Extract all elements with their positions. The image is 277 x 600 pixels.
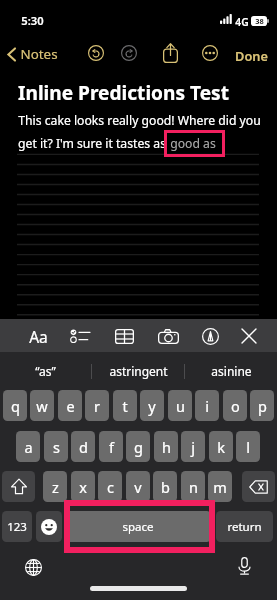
- button[interactable]: q: [3, 390, 27, 421]
- staticText: astringent: [109, 363, 168, 379]
- staticText: y: [148, 396, 156, 416]
- button[interactable]: Done: [235, 47, 268, 64]
- staticText: v: [134, 477, 142, 497]
- staticText: p: [258, 396, 267, 416]
- staticText: return: [227, 519, 262, 535]
- staticText: d: [79, 437, 88, 457]
- button[interactable]: Camera: [153, 321, 183, 351]
- staticText: r: [94, 396, 100, 416]
- button[interactable]: h: [154, 431, 178, 462]
- staticText: t: [122, 396, 128, 416]
- staticText: c: [107, 477, 114, 497]
- button[interactable]: e: [58, 390, 82, 421]
- button[interactable]: space: [65, 511, 211, 542]
- button[interactable]: Change keyboard: [23, 557, 43, 577]
- staticText: e: [66, 396, 75, 416]
- staticText: u: [176, 396, 185, 416]
- staticText: q: [11, 396, 20, 416]
- staticText: h: [162, 437, 171, 457]
- staticText: “as”: [35, 363, 56, 379]
- staticText: Aa: [29, 326, 48, 347]
- staticText: i: [205, 396, 209, 416]
- button[interactable]: Checklist: [65, 321, 95, 351]
- button[interactable]: i: [195, 390, 219, 421]
- button[interactable]: b: [153, 471, 177, 502]
- button[interactable]: z: [43, 471, 67, 502]
- staticText: l: [246, 437, 250, 457]
- staticText: asinine: [211, 363, 252, 379]
- button[interactable]: Share: [163, 43, 178, 63]
- staticText: get it? I'm sure it tastes as: [18, 135, 166, 152]
- staticText: o: [231, 396, 240, 416]
- staticText: This cake looks really good! Where did y…: [18, 112, 261, 129]
- staticText: m: [213, 477, 227, 497]
- button[interactable]: j: [181, 431, 205, 462]
- button[interactable]: Shift: [2, 471, 35, 502]
- button[interactable]: d: [71, 431, 95, 462]
- button[interactable]: asinine: [185, 352, 277, 390]
- button[interactable]: t: [113, 390, 137, 421]
- staticText: good as: [170, 135, 216, 152]
- button[interactable]: u: [168, 390, 192, 421]
- button[interactable]: Emoji: [36, 511, 62, 542]
- staticText: b: [161, 477, 170, 497]
- button[interactable]: g: [126, 431, 150, 462]
- button[interactable]: a: [16, 431, 40, 462]
- button[interactable]: astringent: [92, 352, 184, 390]
- staticText: Notes: [20, 45, 58, 63]
- staticText: 5:30: [21, 13, 44, 28]
- staticText: s: [53, 437, 60, 457]
- button[interactable]: More options: [202, 45, 218, 61]
- staticText: g: [134, 437, 143, 457]
- staticText: Inline Predictions Test: [18, 80, 229, 106]
- button[interactable]: s: [44, 431, 68, 462]
- button[interactable]: Dictation: [234, 556, 254, 576]
- staticText: x: [79, 477, 87, 497]
- button[interactable]: c: [98, 471, 122, 502]
- staticText: j: [191, 437, 195, 457]
- button[interactable]: n: [181, 471, 205, 502]
- button[interactable]: Notes: [4, 43, 61, 65]
- staticText: w: [36, 396, 48, 416]
- button[interactable]: Return: [216, 511, 273, 542]
- button[interactable]: Format: [23, 321, 53, 351]
- staticText: z: [52, 477, 59, 497]
- staticText: k: [217, 437, 225, 457]
- button[interactable]: r: [85, 390, 109, 421]
- button[interactable]: “as”: [0, 352, 91, 390]
- button[interactable]: v: [126, 471, 150, 502]
- staticText: a: [24, 437, 33, 457]
- button[interactable]: p: [250, 390, 274, 421]
- button[interactable]: Backspace: [242, 471, 275, 502]
- staticText: f: [109, 437, 114, 457]
- staticText: 38: [255, 16, 264, 26]
- button[interactable]: Undo: [88, 45, 104, 61]
- staticText: 123: [7, 519, 27, 535]
- button[interactable]: k: [209, 431, 233, 462]
- button[interactable]: o: [223, 390, 247, 421]
- staticText: space: [122, 519, 154, 535]
- button[interactable]: Close: [234, 321, 264, 351]
- button[interactable]: Redo: [121, 45, 137, 61]
- button[interactable]: Markup: [195, 321, 225, 351]
- button[interactable]: Numbers: [2, 511, 32, 542]
- button[interactable]: f: [99, 431, 123, 462]
- button[interactable]: y: [140, 390, 164, 421]
- button[interactable]: m: [208, 471, 232, 502]
- button[interactable]: Table: [109, 321, 139, 351]
- staticText: n: [189, 477, 198, 497]
- button[interactable]: w: [30, 390, 54, 421]
- button[interactable]: x: [71, 471, 95, 502]
- staticText: 4G: [235, 15, 249, 29]
- button[interactable]: l: [236, 431, 260, 462]
